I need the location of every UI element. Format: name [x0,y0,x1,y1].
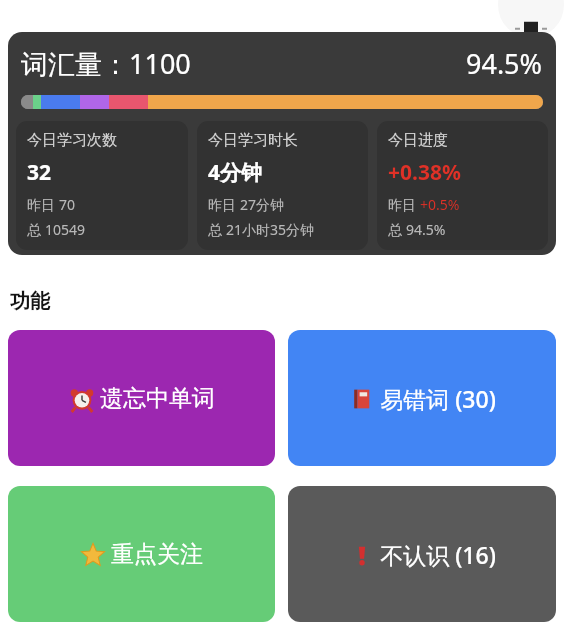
button[interactable]: 重点关注 [8,486,275,622]
staticText: 重点关注 [111,540,203,569]
staticText: 词汇量：1100 [21,45,191,82]
staticText: 功能 [10,289,50,314]
staticText: 94.5% [466,45,543,82]
staticText: 70 [59,195,76,214]
staticText: 总 [208,220,226,239]
staticText: 昨日 [208,195,240,214]
staticText: 32 [27,158,52,187]
button[interactable]: 今日进度 [377,121,548,250]
staticText: 27分钟 [240,195,285,214]
button[interactable]: 今日学习次数 [16,121,188,250]
staticText: 今日学习次数 [27,131,117,150]
staticText: +0.38% [388,158,461,187]
button[interactable]: 不认识 (16) [288,486,556,622]
button[interactable]: 词汇量：1100 [8,32,556,255]
staticText: 总 [27,220,45,239]
staticText: 今日学习时长 [208,131,298,150]
staticText: 10549 [45,220,86,239]
staticText: 遗忘中单词 [100,384,215,413]
button[interactable]: More options [498,0,564,38]
staticText: 昨日 [388,195,420,214]
button[interactable]: 今日学习时长 [197,121,368,250]
staticText: 昨日 [27,195,59,214]
staticText: 不认识 (16) [380,539,496,570]
staticText: 94.5% [406,220,446,239]
staticText: +0.5% [420,195,460,214]
staticText: 4分钟 [208,158,263,187]
staticText: 21小时35分钟 [226,220,315,239]
button[interactable]: 易错词 (30) [288,330,556,466]
staticText: 总 [388,220,406,239]
button[interactable]: 遗忘中单词 [8,330,275,466]
staticText: 易错词 (30) [380,383,496,414]
staticText: 今日进度 [388,131,448,150]
